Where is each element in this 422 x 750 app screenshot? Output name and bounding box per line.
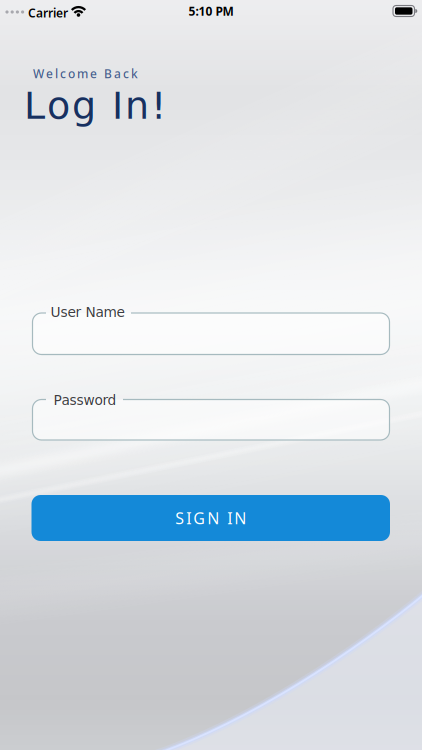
staticText: Log In! bbox=[24, 83, 166, 128]
staticText: Welcome Back bbox=[33, 66, 138, 81]
staticText: User Name bbox=[50, 304, 124, 320]
button[interactable]: SIGN IN bbox=[31, 495, 390, 541]
staticText: SIGN IN bbox=[175, 507, 246, 529]
staticText: Carrier bbox=[28, 5, 68, 21]
staticText: 5:10 PM bbox=[188, 3, 233, 19]
staticText: Password bbox=[53, 392, 116, 408]
textField[interactable]: Password bbox=[40, 404, 380, 434]
